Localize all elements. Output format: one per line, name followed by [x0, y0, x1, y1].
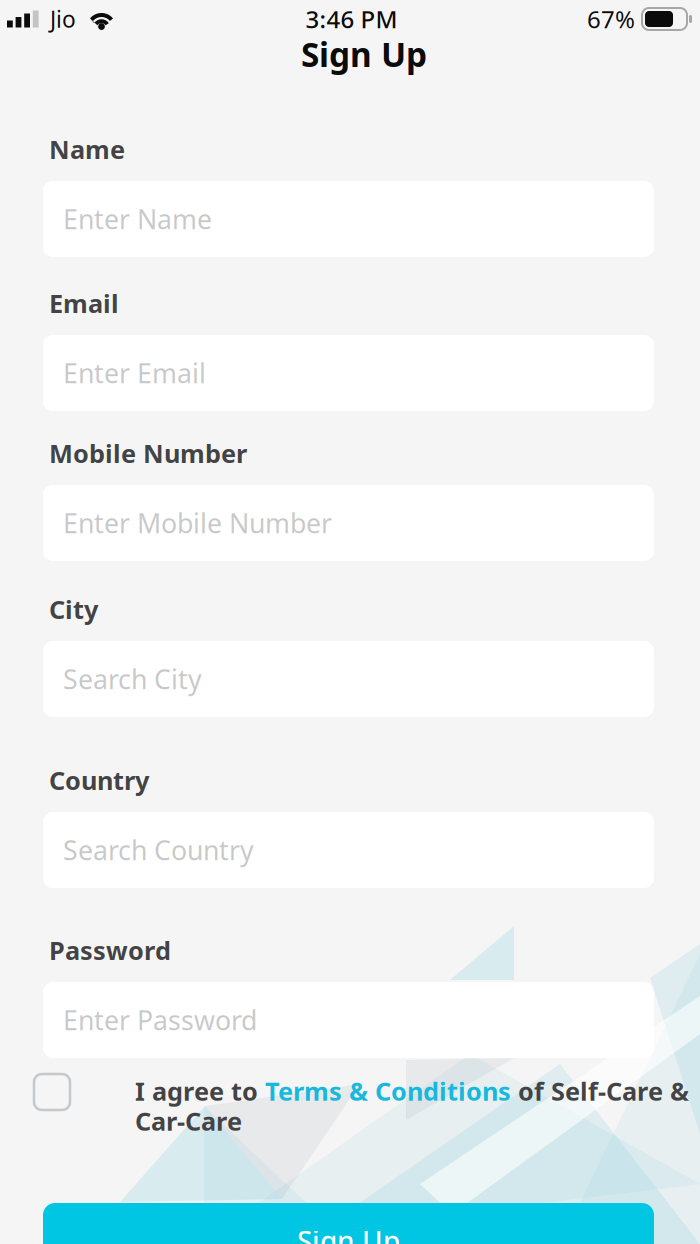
staticText: 3:46 PM: [305, 3, 397, 35]
staticText: Jio: [50, 4, 76, 34]
staticText: Search Country: [63, 832, 254, 868]
button[interactable]: Enter Password: [43, 982, 654, 1058]
staticText: Terms & Conditions: [265, 1074, 511, 1108]
button[interactable]: Enter Email: [43, 335, 654, 411]
staticText: Email: [49, 286, 119, 320]
button[interactable]: I agree to: [135, 1076, 691, 1136]
button[interactable]: Search City: [43, 641, 654, 717]
staticText: Password: [49, 933, 171, 967]
button[interactable]: Enter Name: [43, 181, 654, 257]
button[interactable]: I agree to Terms and Conditions: [34, 1074, 70, 1110]
staticText: Car-Care: [135, 1104, 242, 1138]
staticText: Enter Email: [63, 355, 206, 391]
staticText: I agree to: [135, 1074, 265, 1108]
staticText: Enter Mobile Number: [63, 505, 332, 541]
staticText: 67%: [587, 3, 635, 35]
button[interactable]: Search Country: [43, 812, 654, 888]
staticText: Mobile Number: [49, 436, 247, 470]
staticText: Enter Name: [63, 201, 212, 237]
button[interactable]: Enter Mobile Number: [43, 485, 654, 561]
button[interactable]: Sign Up: [43, 1203, 654, 1244]
staticText: Country: [49, 763, 149, 797]
staticText: City: [49, 592, 98, 626]
staticText: Sign Up: [297, 1222, 400, 1244]
staticText: Search City: [63, 661, 202, 697]
staticText: Sign Up: [301, 31, 427, 77]
staticText: Enter Password: [63, 1002, 257, 1038]
staticText: Name: [49, 132, 125, 166]
staticText: of Self-Care &: [511, 1074, 689, 1108]
